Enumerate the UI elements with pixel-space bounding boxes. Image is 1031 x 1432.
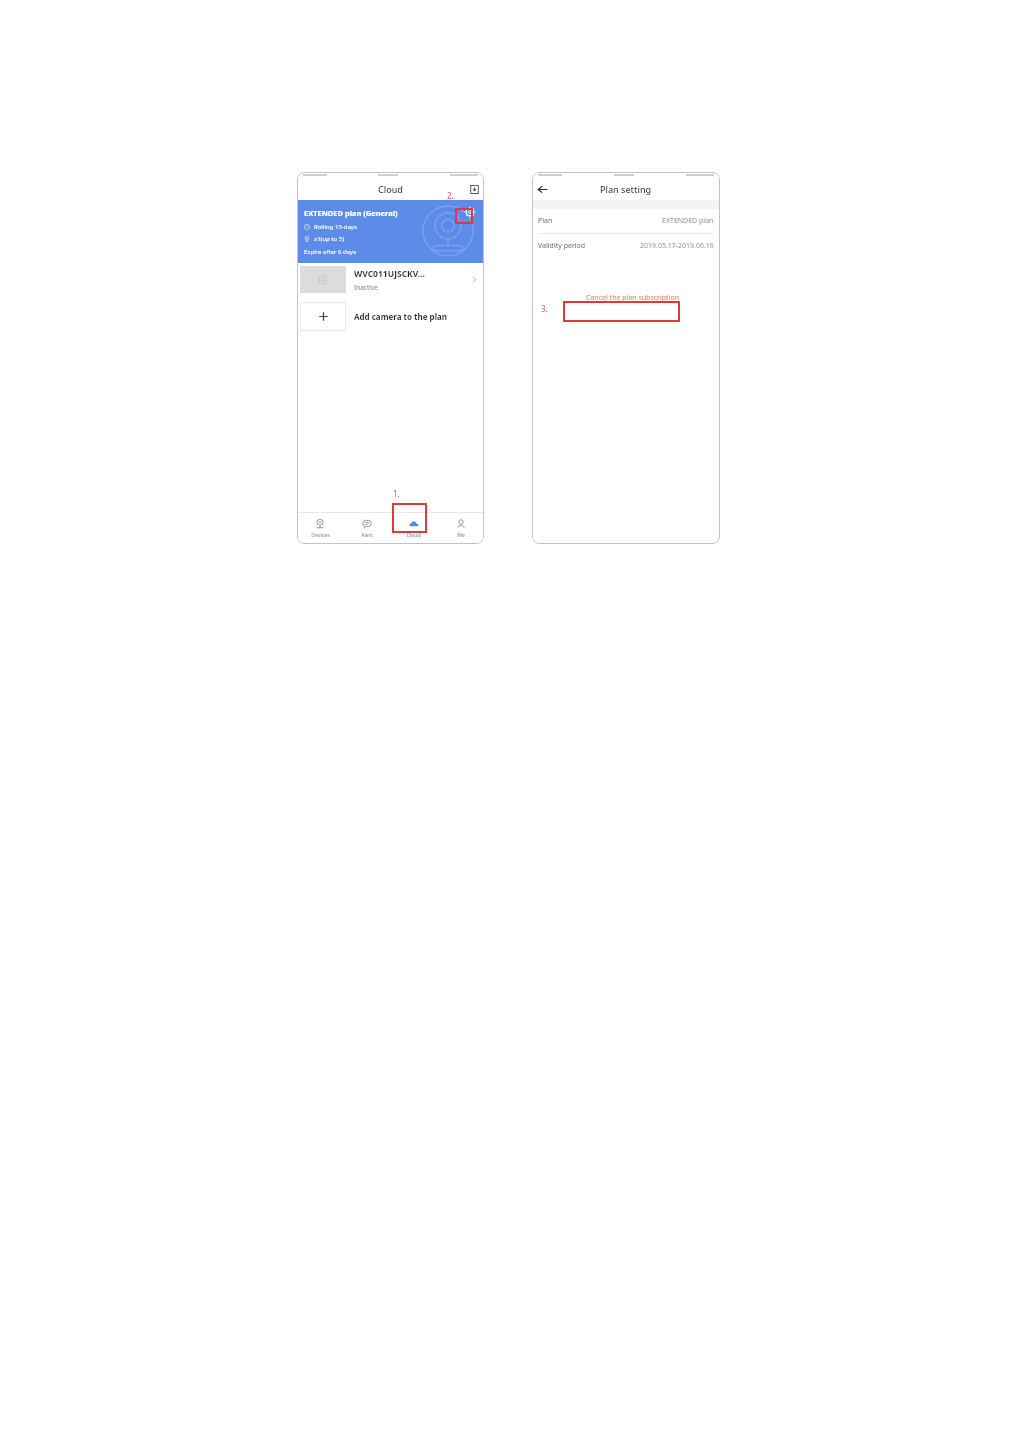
button[interactable]: Plan: [538, 209, 714, 233]
staticText: Add camera to the plan: [354, 311, 448, 322]
button[interactable]: Add camera to the plan: [297, 301, 484, 332]
button[interactable]: Alert: [343, 512, 390, 544]
button[interactable]: Cancel the plan subscription: [586, 289, 680, 306]
staticText: Cancel the plan subscription: [586, 293, 680, 303]
button[interactable]: Plan settings: [465, 207, 475, 217]
button[interactable]: Cloud: [390, 512, 437, 544]
staticText: EXTENDED plan: [662, 216, 714, 226]
button[interactable]: Devices: [297, 512, 343, 544]
staticText: Cloud: [406, 531, 421, 538]
button[interactable]: Validity period: [538, 234, 714, 258]
staticText: Plan setting: [600, 183, 652, 195]
staticText: Rolling 15-days: [314, 223, 357, 231]
staticText: 2.: [447, 190, 454, 201]
staticText: Alert: [361, 531, 373, 538]
button[interactable]: EXTENDED plan (General): [297, 200, 484, 263]
staticText: WVC011UJSCKV...: [354, 268, 425, 280]
staticText: 2019.05.17-2019.06.16: [640, 241, 714, 251]
staticText: Devices: [311, 531, 330, 538]
staticText: 3.: [541, 303, 548, 314]
staticText: Plan: [538, 216, 553, 226]
button[interactable]: Me: [437, 512, 484, 544]
staticText: EXTENDED plan (General): [304, 208, 398, 218]
button[interactable]: WVC011UJSCKV...: [297, 263, 484, 296]
staticText: Me: [457, 531, 465, 538]
staticText: Cloud: [378, 183, 403, 195]
button[interactable]: Inbox: [470, 185, 479, 194]
button[interactable]: Back: [537, 184, 548, 195]
staticText: x1(up to 5): [314, 235, 344, 243]
staticText: Expire after 6 days: [304, 248, 357, 256]
staticText: 1.: [393, 488, 400, 499]
staticText: Validity period: [538, 241, 586, 251]
staticText: Inactive: [354, 283, 378, 292]
